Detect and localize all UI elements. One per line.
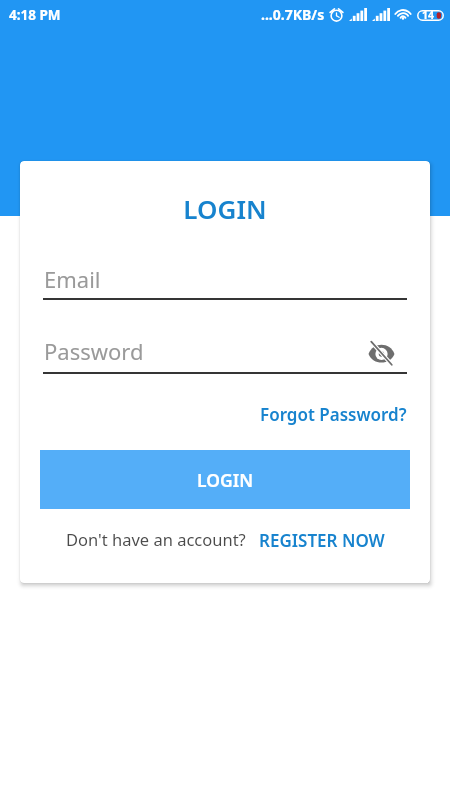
button[interactable]: LOGIN [40,450,410,509]
staticText: Email [44,264,101,294]
button[interactable]: Forgot Password? [252,395,415,434]
staticText: LOGIN [20,191,430,226]
staticText: LOGIN [197,468,254,492]
staticText: Forgot Password? [260,403,407,426]
staticText: REGISTER NOW [259,529,385,552]
button[interactable]: REGISTER NOW [251,521,393,560]
staticText: ...0.7KB/s [261,5,325,24]
button[interactable]: Show password [367,340,396,366]
staticText: Password [44,336,144,366]
staticText: 4:18 PM [9,6,61,24]
staticText: Don't have an account? [66,528,246,550]
staticText: 14 [422,8,435,22]
